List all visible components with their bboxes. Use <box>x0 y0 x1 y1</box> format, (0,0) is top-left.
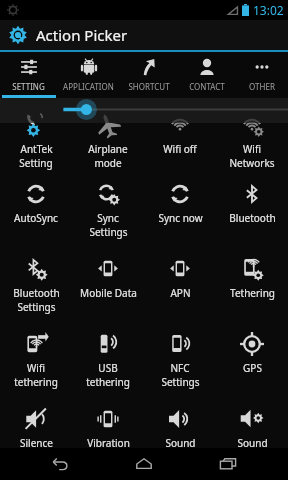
staticText: Vibration <box>87 436 130 448</box>
button[interactable]: Sync <box>72 173 144 248</box>
staticText: 13:02 <box>253 2 284 18</box>
staticText: NFC <box>170 361 190 375</box>
button[interactable]: USB <box>72 323 144 398</box>
staticText: Bluetooth <box>229 211 276 225</box>
button[interactable]: Sound <box>216 398 288 448</box>
staticText: Bluetooth <box>13 286 60 300</box>
button[interactable]: Sound <box>144 398 216 448</box>
staticText: Setting <box>19 156 53 170</box>
button[interactable]: AntTek <box>0 98 72 173</box>
button[interactable]: Mobile Data <box>72 248 144 323</box>
button[interactable]: Wifi <box>0 323 72 398</box>
staticText: OTHER <box>249 81 275 92</box>
button[interactable]: AutoSync <box>0 173 72 248</box>
button[interactable]: GPS <box>216 323 288 398</box>
staticText: GPS <box>243 361 262 375</box>
button[interactable]: SETTING <box>0 52 57 98</box>
button[interactable]: Sync now <box>144 173 216 248</box>
staticText: USB <box>98 361 118 375</box>
button[interactable]: CONTACT <box>178 52 236 98</box>
staticText: SETTING <box>12 81 45 92</box>
button[interactable]: Tethering <box>216 248 288 323</box>
staticText: Sync now <box>158 211 203 225</box>
button[interactable]: Action Picker <box>0 20 288 50</box>
button[interactable]: Recent apps <box>204 448 252 480</box>
staticText: Mobile Data <box>80 286 137 300</box>
staticText: Sound <box>165 436 196 448</box>
button[interactable]: NFC <box>144 323 216 398</box>
staticText: CONTACT <box>189 81 225 92</box>
staticText: Settings <box>161 375 200 389</box>
staticText: Action Picker <box>36 25 128 45</box>
staticText: tethering <box>86 375 130 389</box>
staticText: Settings <box>89 225 128 239</box>
button[interactable]: Airplane <box>72 98 144 173</box>
staticText: tethering <box>14 375 58 389</box>
staticText: Settings <box>17 300 56 314</box>
button[interactable]: Back <box>36 448 84 480</box>
button[interactable]: Wifi <box>216 98 288 173</box>
staticText: Wifi off <box>163 142 197 156</box>
staticText: Tethering <box>230 286 275 300</box>
staticText: Wifi <box>27 361 45 375</box>
button[interactable]: OTHER <box>236 52 288 98</box>
staticText: APPLICATION <box>63 81 114 92</box>
staticText: APN <box>170 286 191 300</box>
staticText: mode <box>94 156 122 170</box>
staticText: AntTek <box>20 142 53 156</box>
staticText: Silence <box>20 436 53 448</box>
staticText: Airplane <box>88 142 128 156</box>
button[interactable]: Home <box>120 448 168 480</box>
button[interactable] <box>0 98 288 123</box>
staticText: SHORTCUT <box>128 81 170 92</box>
staticText: Sound <box>237 436 268 448</box>
button[interactable]: Silence <box>0 398 72 448</box>
staticText: Sync <box>97 211 119 225</box>
button[interactable]: APN <box>144 248 216 323</box>
button[interactable]: Wifi off <box>144 98 216 173</box>
staticText: Wifi <box>243 142 261 156</box>
staticText: Networks <box>229 156 275 170</box>
staticText: AutoSync <box>14 211 58 225</box>
button[interactable]: Bluetooth <box>216 173 288 248</box>
button[interactable]: SHORTCUT <box>120 52 178 98</box>
button[interactable]: Bluetooth <box>0 248 72 323</box>
button[interactable]: Vibration <box>72 398 144 448</box>
button[interactable]: APPLICATION <box>57 52 120 98</box>
